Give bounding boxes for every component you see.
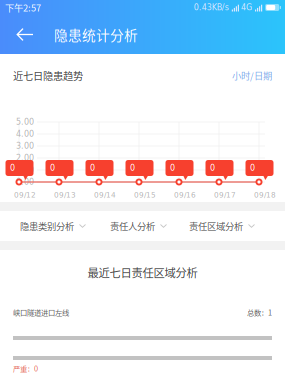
staticText: 09/18 — [254, 191, 276, 199]
button[interactable]: Back — [8, 20, 42, 49]
staticText: 0 — [10, 163, 15, 173]
button[interactable]: 小时/日期 — [232, 69, 272, 82]
staticText: 近七日隐患趋势 — [13, 68, 83, 83]
staticText: 责任区域分析 — [189, 219, 243, 233]
staticText: 隐患统计分析 — [54, 25, 138, 44]
staticText: 0 — [170, 163, 175, 173]
staticText: 09/12 — [14, 191, 36, 199]
button[interactable]: 责任人分析 — [110, 211, 167, 241]
staticText: 09/16 — [174, 191, 196, 199]
staticText: 0 — [50, 163, 55, 173]
staticText: 3.00 — [16, 141, 34, 151]
staticText: 09/13 — [54, 191, 76, 199]
staticText: 0.00 — [16, 177, 34, 187]
staticText: 09/15 — [134, 191, 156, 199]
staticText: 下午2:57 — [5, 1, 41, 14]
staticText: 小时/日期 — [232, 69, 272, 82]
staticText: 0.43KB/s — [194, 3, 229, 12]
staticText: 0 — [130, 163, 135, 173]
staticText: 09/17 — [214, 191, 236, 199]
staticText: 5.00 — [16, 117, 34, 127]
staticText: 总数：1 — [247, 307, 272, 318]
staticText: 0 — [90, 163, 95, 173]
staticText: 峡口隧道进口左线 — [13, 307, 69, 318]
staticText: 0 — [250, 163, 255, 173]
staticText: 09/14 — [94, 191, 116, 199]
staticText: 1.00 — [16, 165, 34, 175]
staticText: 严重：0 — [13, 363, 38, 374]
staticText: 4.00 — [16, 129, 34, 139]
staticText: 4G — [241, 3, 252, 12]
staticText: 0 — [210, 163, 215, 173]
staticText: 隐患类别分析 — [20, 219, 74, 233]
staticText: 2.00 — [16, 153, 34, 163]
button[interactable]: 责任区域分析 — [189, 211, 255, 241]
staticText: 最近七日责任区域分析 — [87, 264, 197, 280]
button[interactable]: 隐患类别分析 — [20, 211, 86, 241]
staticText: 责任人分析 — [110, 219, 155, 233]
